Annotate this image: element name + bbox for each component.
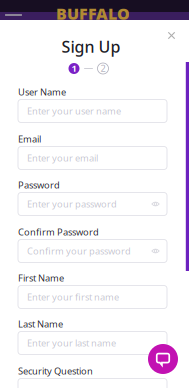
staticText: 2	[100, 62, 105, 74]
staticText: Confirm Password	[18, 226, 99, 238]
staticText: BUFFALO	[56, 3, 130, 24]
staticText: Enter your email	[27, 152, 98, 164]
staticText: Enter your first name	[27, 291, 119, 303]
staticText: Password	[18, 179, 60, 191]
staticText: Security Question	[18, 365, 93, 377]
staticText: Enter your last name	[27, 337, 116, 349]
staticText: Enter your password	[27, 198, 117, 210]
staticText: 1	[71, 62, 76, 74]
staticText: Last Name	[18, 318, 63, 330]
staticText: User Name	[18, 86, 66, 98]
staticText: Email	[18, 133, 41, 145]
button[interactable]: Open chat	[148, 344, 178, 374]
staticText: Confirm your password	[27, 245, 131, 257]
staticText: Sign Up	[61, 36, 120, 57]
staticText: First Name	[18, 272, 64, 284]
staticText: Enter your user name	[27, 105, 121, 117]
button[interactable]: Close	[163, 27, 179, 43]
